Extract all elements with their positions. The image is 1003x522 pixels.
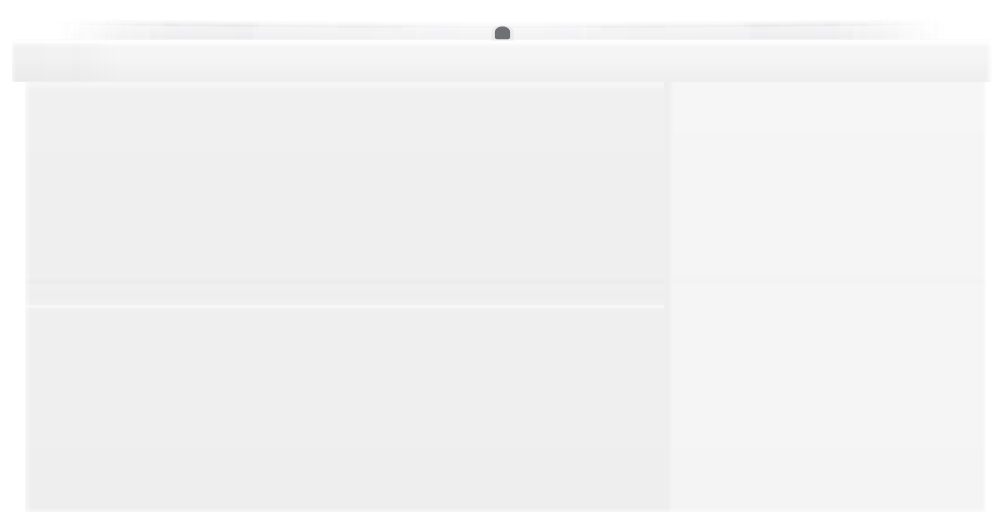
button[interactable]: Basin overflow — [484, 14, 520, 48]
